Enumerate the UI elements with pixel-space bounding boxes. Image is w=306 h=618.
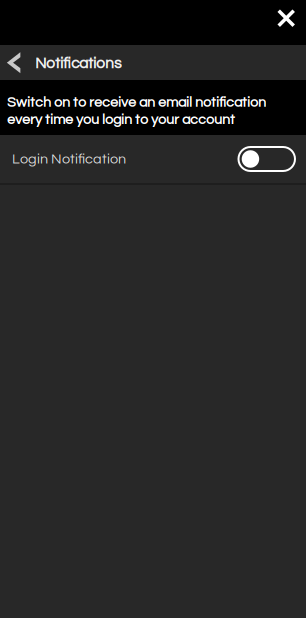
button[interactable]: Back [0,45,28,80]
staticText: Login Notification [12,152,126,166]
button[interactable]: Login Notification [0,135,306,183]
staticText: Notifications [35,55,122,72]
staticText: Switch on to receive an email notificati… [7,95,266,127]
button[interactable]: Close [264,0,306,36]
